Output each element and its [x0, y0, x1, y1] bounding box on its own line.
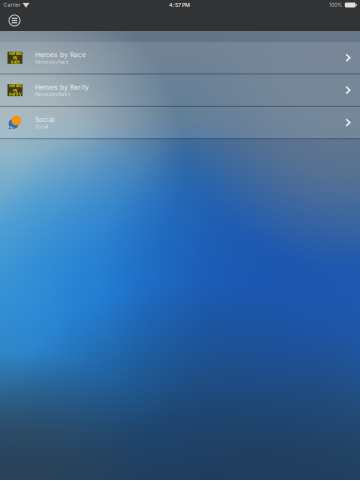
staticText: Heroes: [8, 83, 21, 88]
staticText: Social: [35, 124, 48, 129]
staticText: Rarity: [9, 92, 21, 97]
staticText: Heroes by Rarity: [35, 92, 70, 97]
staticText: Heroes by Race: [35, 51, 86, 59]
staticText: 4:57 PM: [169, 2, 190, 8]
staticText: Carrier: [3, 2, 20, 8]
staticText: Heroes by Rarity: [35, 83, 89, 91]
staticText: Heroes: [8, 51, 21, 56]
staticText: by: [13, 55, 17, 60]
button[interactable]: Social: [0, 107, 360, 138]
button[interactable]: Menu: [0, 11, 26, 30]
staticText: by: [13, 88, 17, 92]
staticText: 100%: [329, 2, 342, 8]
staticText: Heroes by Race: [35, 59, 69, 65]
staticText: Race: [10, 60, 19, 64]
button[interactable]: Heroes: [0, 74, 360, 106]
staticText: Social: [35, 116, 55, 124]
button[interactable]: Heroes: [0, 42, 360, 73]
